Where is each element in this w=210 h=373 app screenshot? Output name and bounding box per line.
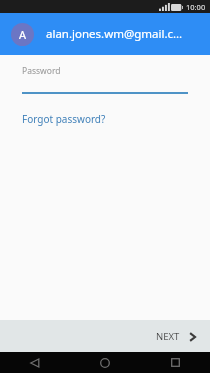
- button[interactable]: Password: [0, 65, 210, 94]
- staticText: Forgot password?: [22, 112, 106, 126]
- button[interactable]: Home: [70, 352, 140, 373]
- staticText: 10:00: [186, 2, 206, 12]
- button[interactable]: Recents: [140, 352, 210, 373]
- staticText: Password: [22, 65, 61, 77]
- staticText: alan.jones.wm@gmail.c…: [46, 26, 183, 42]
- staticText: NEXT: [156, 330, 180, 343]
- button[interactable]: Forgot password?: [22, 110, 106, 128]
- button[interactable]: NEXT: [142, 324, 210, 349]
- staticText: A: [19, 27, 27, 42]
- button[interactable]: Back: [0, 352, 70, 373]
- button[interactable]: A: [0, 13, 210, 55]
